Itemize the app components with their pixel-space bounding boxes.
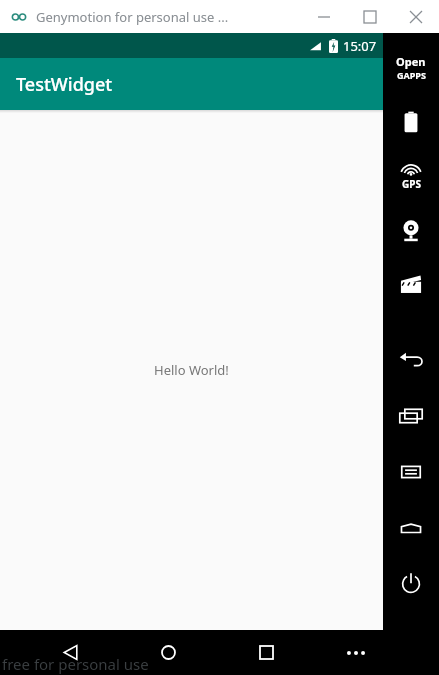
button[interactable]: GPS bbox=[383, 155, 439, 199]
staticText: 15:07 bbox=[343, 37, 377, 55]
button[interactable]: Battery bbox=[383, 101, 439, 143]
button[interactable]: Minimize bbox=[301, 0, 347, 33]
button[interactable]: More options bbox=[335, 630, 377, 675]
button[interactable]: Recent apps bbox=[383, 395, 439, 437]
staticText: Open bbox=[396, 54, 426, 69]
button[interactable]: Back bbox=[41, 630, 99, 675]
staticText: GPS bbox=[402, 177, 421, 191]
button[interactable]: Home bbox=[139, 630, 197, 675]
staticText: free for personal use bbox=[2, 654, 149, 674]
button[interactable]: Open GAPPS bbox=[383, 45, 439, 89]
button[interactable]: Rotate bbox=[383, 507, 439, 549]
button[interactable]: Power bbox=[383, 563, 439, 605]
staticText: TestWidget bbox=[16, 72, 113, 97]
button[interactable]: Maximize bbox=[347, 0, 393, 33]
button[interactable]: Record video bbox=[383, 263, 439, 305]
staticText: Hello World! bbox=[154, 361, 229, 379]
button[interactable]: Menu bbox=[383, 451, 439, 493]
button[interactable]: Back bbox=[383, 339, 439, 381]
button[interactable]: Camera bbox=[383, 209, 439, 251]
button[interactable]: TestWidget bbox=[0, 58, 383, 110]
button[interactable]: Close bbox=[393, 0, 439, 33]
staticText: GAPPS bbox=[397, 69, 426, 81]
staticText: Genymotion for personal use ... bbox=[36, 8, 229, 26]
button[interactable]: Recents bbox=[237, 630, 295, 675]
